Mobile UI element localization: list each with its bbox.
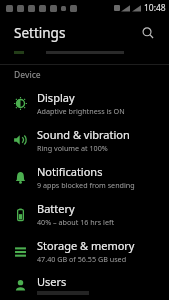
button[interactable]: Battery <box>0 195 169 232</box>
staticText: 40% – about 16 hrs left <box>37 217 115 227</box>
staticText: Adaptive brightness is ON <box>37 106 125 116</box>
staticText: Users <box>37 274 67 289</box>
staticText: 47.40 GB of 56.55 GB used <box>37 254 127 264</box>
button[interactable]: Sound & vibration <box>0 121 169 158</box>
button[interactable]: Notifications <box>0 158 169 195</box>
button[interactable]: Users <box>0 269 169 300</box>
staticText: Battery <box>37 201 75 216</box>
staticText: 9 apps blocked from sending <box>37 180 135 190</box>
button[interactable]: Display <box>0 84 169 121</box>
button[interactable]: Storage & memory <box>0 232 169 269</box>
staticText: Settings <box>14 24 66 42</box>
staticText: Display <box>37 90 75 105</box>
staticText: Ring volume at 100% <box>37 143 108 153</box>
staticText: Sound & vibration <box>37 127 130 142</box>
staticText: 10:48 <box>144 2 166 14</box>
button[interactable]: Search <box>135 20 161 46</box>
staticText: Storage & memory <box>37 238 135 253</box>
staticText: Device <box>14 69 41 81</box>
staticText: Notifications <box>37 164 103 179</box>
